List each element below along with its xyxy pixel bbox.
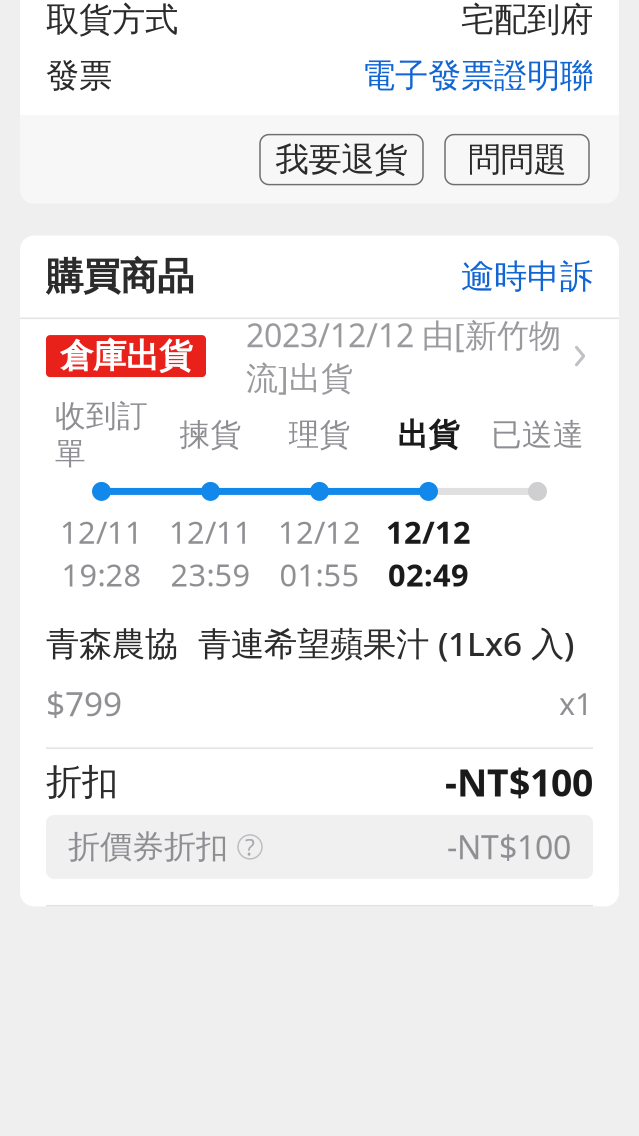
staticText: 12/11	[60, 511, 143, 552]
staticText: 宅配到府	[461, 0, 593, 40]
staticText: 折價券折扣	[68, 827, 228, 867]
staticText: 19:28	[61, 554, 141, 595]
button[interactable]: 問問題	[445, 135, 589, 185]
staticText: -NT$100	[445, 757, 593, 807]
staticText: 2023/12/12 由[新竹物流]出貨	[246, 314, 561, 399]
staticText: ?	[245, 832, 255, 862]
staticText: 發票	[46, 55, 112, 96]
staticText: 12/12	[386, 511, 471, 552]
staticText: 問問題	[467, 139, 566, 180]
staticText: -NT$100	[447, 826, 571, 868]
staticText: 01:55	[279, 554, 359, 595]
staticText: 購買商品	[46, 254, 194, 300]
button[interactable]: 倉庫出貨	[20, 319, 619, 393]
staticText: x1	[559, 683, 593, 724]
staticText: 青森農協 青連希望蘋果汁 (1Lx6 入)	[46, 621, 574, 665]
staticText: 收到訂單	[55, 397, 148, 472]
staticText: 23:59	[170, 554, 250, 595]
button[interactable]: 折價券折扣	[46, 815, 593, 879]
staticText: 出貨	[397, 416, 459, 454]
staticText: 取貨方式	[46, 0, 178, 40]
staticText: 逾時申訴	[461, 256, 593, 297]
staticText: 折扣	[46, 760, 118, 804]
button[interactable]: 購買商品	[20, 236, 619, 318]
button[interactable]: 我要退貨	[260, 135, 423, 185]
staticText: 12/11	[169, 511, 252, 552]
staticText: 12/12	[278, 511, 361, 552]
staticText: 理貨	[288, 416, 350, 454]
staticText: 揀貨	[179, 416, 241, 454]
staticText: 02:49	[388, 554, 469, 595]
staticText: 已送達	[491, 416, 584, 454]
staticText: 倉庫出貨	[60, 336, 192, 376]
staticText: $799	[46, 681, 122, 725]
staticText: 電子發票證明聯	[362, 55, 593, 96]
staticText: 我要退貨	[275, 139, 407, 180]
